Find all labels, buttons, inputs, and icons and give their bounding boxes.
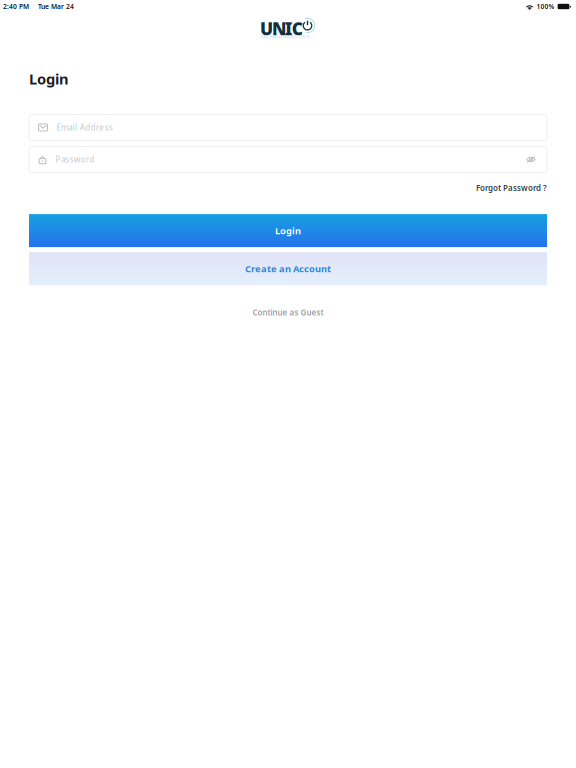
staticText: Tue Mar 24: [38, 2, 74, 11]
staticText: Login: [29, 69, 69, 88]
staticText: Login: [275, 224, 301, 237]
staticText: Email Address: [56, 122, 113, 133]
staticText: UNIC: [260, 17, 303, 40]
staticText: Create an Account: [245, 262, 331, 275]
button[interactable]: Create an Account: [29, 252, 547, 285]
staticText: Password: [55, 154, 94, 165]
staticText: Forgot Password ?: [476, 182, 547, 193]
staticText: 100%: [537, 2, 555, 11]
button[interactable]: Login: [29, 214, 547, 247]
button[interactable]: Forgot Password ?: [476, 182, 547, 193]
button[interactable]: Continue as Guest: [252, 307, 323, 318]
staticText: 2:40 PM: [3, 2, 29, 11]
staticText: TECHNOLOGIES GROUP: [260, 34, 316, 39]
staticText: Continue as Guest: [252, 307, 323, 318]
